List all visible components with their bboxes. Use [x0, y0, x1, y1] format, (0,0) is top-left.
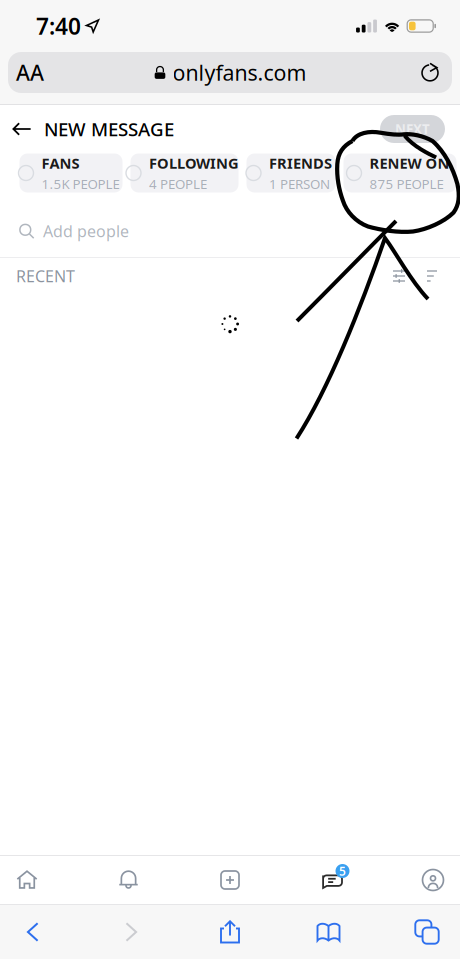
staticText: RECENT: [16, 265, 75, 287]
staticText: 1 PERSON: [269, 175, 330, 193]
button[interactable]: FRIENDS: [246, 153, 335, 192]
button[interactable]: Share: [209, 910, 251, 954]
staticText: 875 PEOPLE: [369, 175, 443, 193]
staticText: RENEW ON: [369, 153, 449, 173]
staticText: 1.5K PEOPLE: [41, 175, 119, 193]
staticText: FOLLOWING: [149, 153, 239, 173]
staticText: FRIENDS: [269, 153, 332, 173]
staticText: FANS: [41, 153, 79, 173]
button[interactable]: FOLLOWING: [130, 153, 238, 192]
button[interactable]: Bookmarks: [307, 910, 349, 954]
staticText: NEW MESSAGE: [44, 117, 174, 141]
button[interactable]: New post: [207, 856, 253, 904]
button[interactable]: Tabs: [406, 910, 448, 954]
button[interactable]: Page settings: [8, 52, 52, 93]
button[interactable]: Filter: [382, 258, 416, 294]
button[interactable]: Sort: [416, 258, 448, 294]
staticText: NEXT: [395, 120, 430, 138]
staticText: 4 PEOPLE: [149, 175, 207, 193]
staticText: AA: [16, 58, 44, 87]
button[interactable]: Back: [12, 910, 54, 954]
button[interactable]: Forward: [110, 910, 152, 954]
button[interactable]: Messages, 5 unread: [308, 856, 354, 904]
staticText: Add people: [43, 220, 129, 242]
button[interactable]: Home: [4, 856, 50, 904]
button[interactable]: Profile: [410, 856, 456, 904]
button[interactable]: NEXT: [380, 115, 445, 143]
staticText: onlyfans.com: [172, 58, 306, 87]
button[interactable]: FANS: [19, 153, 122, 192]
button[interactable]: Notifications: [105, 856, 151, 904]
staticText: 7:40: [36, 11, 81, 41]
button[interactable]: Reload: [408, 52, 452, 93]
button[interactable]: Back: [0, 105, 44, 153]
staticText: 5: [339, 863, 346, 879]
button[interactable]: RENEW ON: [343, 153, 456, 192]
